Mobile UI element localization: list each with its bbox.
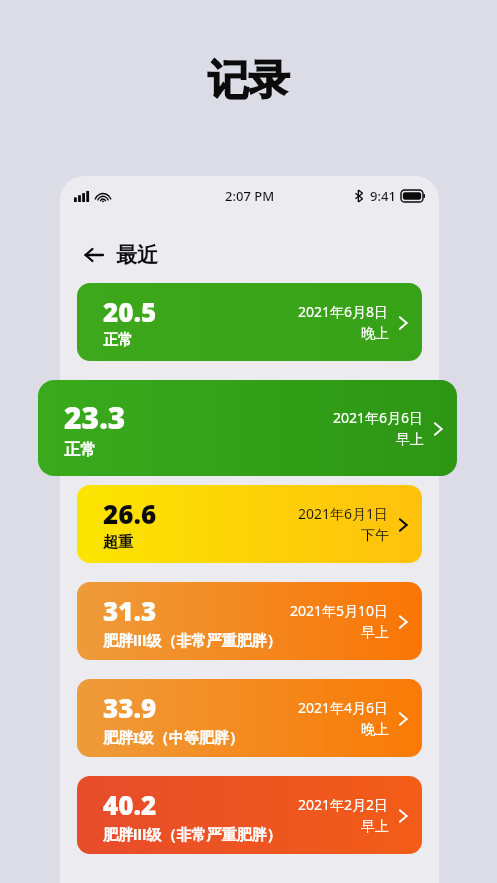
other: Details: [399, 614, 408, 630]
staticText: 早上: [361, 818, 389, 836]
staticText: 23.3: [64, 397, 126, 438]
staticText: 肥胖lll级（非常严重肥胖）: [103, 630, 282, 650]
other: Details: [434, 421, 443, 437]
staticText: 最近: [116, 242, 158, 268]
staticText: 超重: [103, 533, 133, 552]
other: Details: [399, 711, 408, 727]
staticText: 早上: [361, 624, 389, 642]
other: Details: [399, 315, 408, 331]
staticText: 40.2: [103, 787, 157, 822]
staticText: 2021年5月10日: [290, 601, 389, 620]
staticText: 早上: [396, 431, 424, 449]
staticText: 康掌门 • KANGZM.COM: [60, 831, 439, 857]
staticText: 正常: [103, 331, 133, 350]
button[interactable]: 23.3: [38, 380, 457, 476]
staticText: 33.9: [103, 690, 157, 725]
other: Details: [399, 808, 408, 824]
staticText: 2021年2月2日: [298, 795, 389, 814]
staticText: 2021年4月6日: [298, 698, 389, 717]
button[interactable]: 20.5: [77, 283, 422, 361]
staticText: 2021年6月6日: [333, 408, 424, 427]
staticText: 2:07 PM: [225, 187, 275, 205]
other: Details: [399, 517, 408, 533]
staticText: 晚上: [361, 325, 389, 343]
button[interactable]: Back: [80, 238, 162, 272]
staticText: 20.5: [103, 294, 157, 329]
staticText: 正常: [64, 440, 96, 460]
button[interactable]: 31.3: [77, 582, 422, 660]
button[interactable]: 33.9: [77, 679, 422, 757]
button[interactable]: 26.6: [77, 485, 422, 563]
other: Back: [84, 245, 104, 265]
staticText: 肥胖lll级（非常严重肥胖）: [103, 824, 282, 844]
staticText: 2021年6月8日: [298, 302, 389, 321]
staticText: 下午: [361, 527, 389, 545]
button[interactable]: 40.2: [77, 776, 422, 854]
staticText: 2021年6月1日: [298, 504, 389, 523]
staticText: 肥胖I级（中等肥胖）: [103, 727, 244, 747]
staticText: 26.6: [103, 496, 157, 531]
staticText: 31.3: [103, 593, 157, 628]
staticText: 记录: [0, 55, 497, 107]
staticText: 晚上: [361, 721, 389, 739]
staticText: 9:41: [370, 187, 396, 205]
